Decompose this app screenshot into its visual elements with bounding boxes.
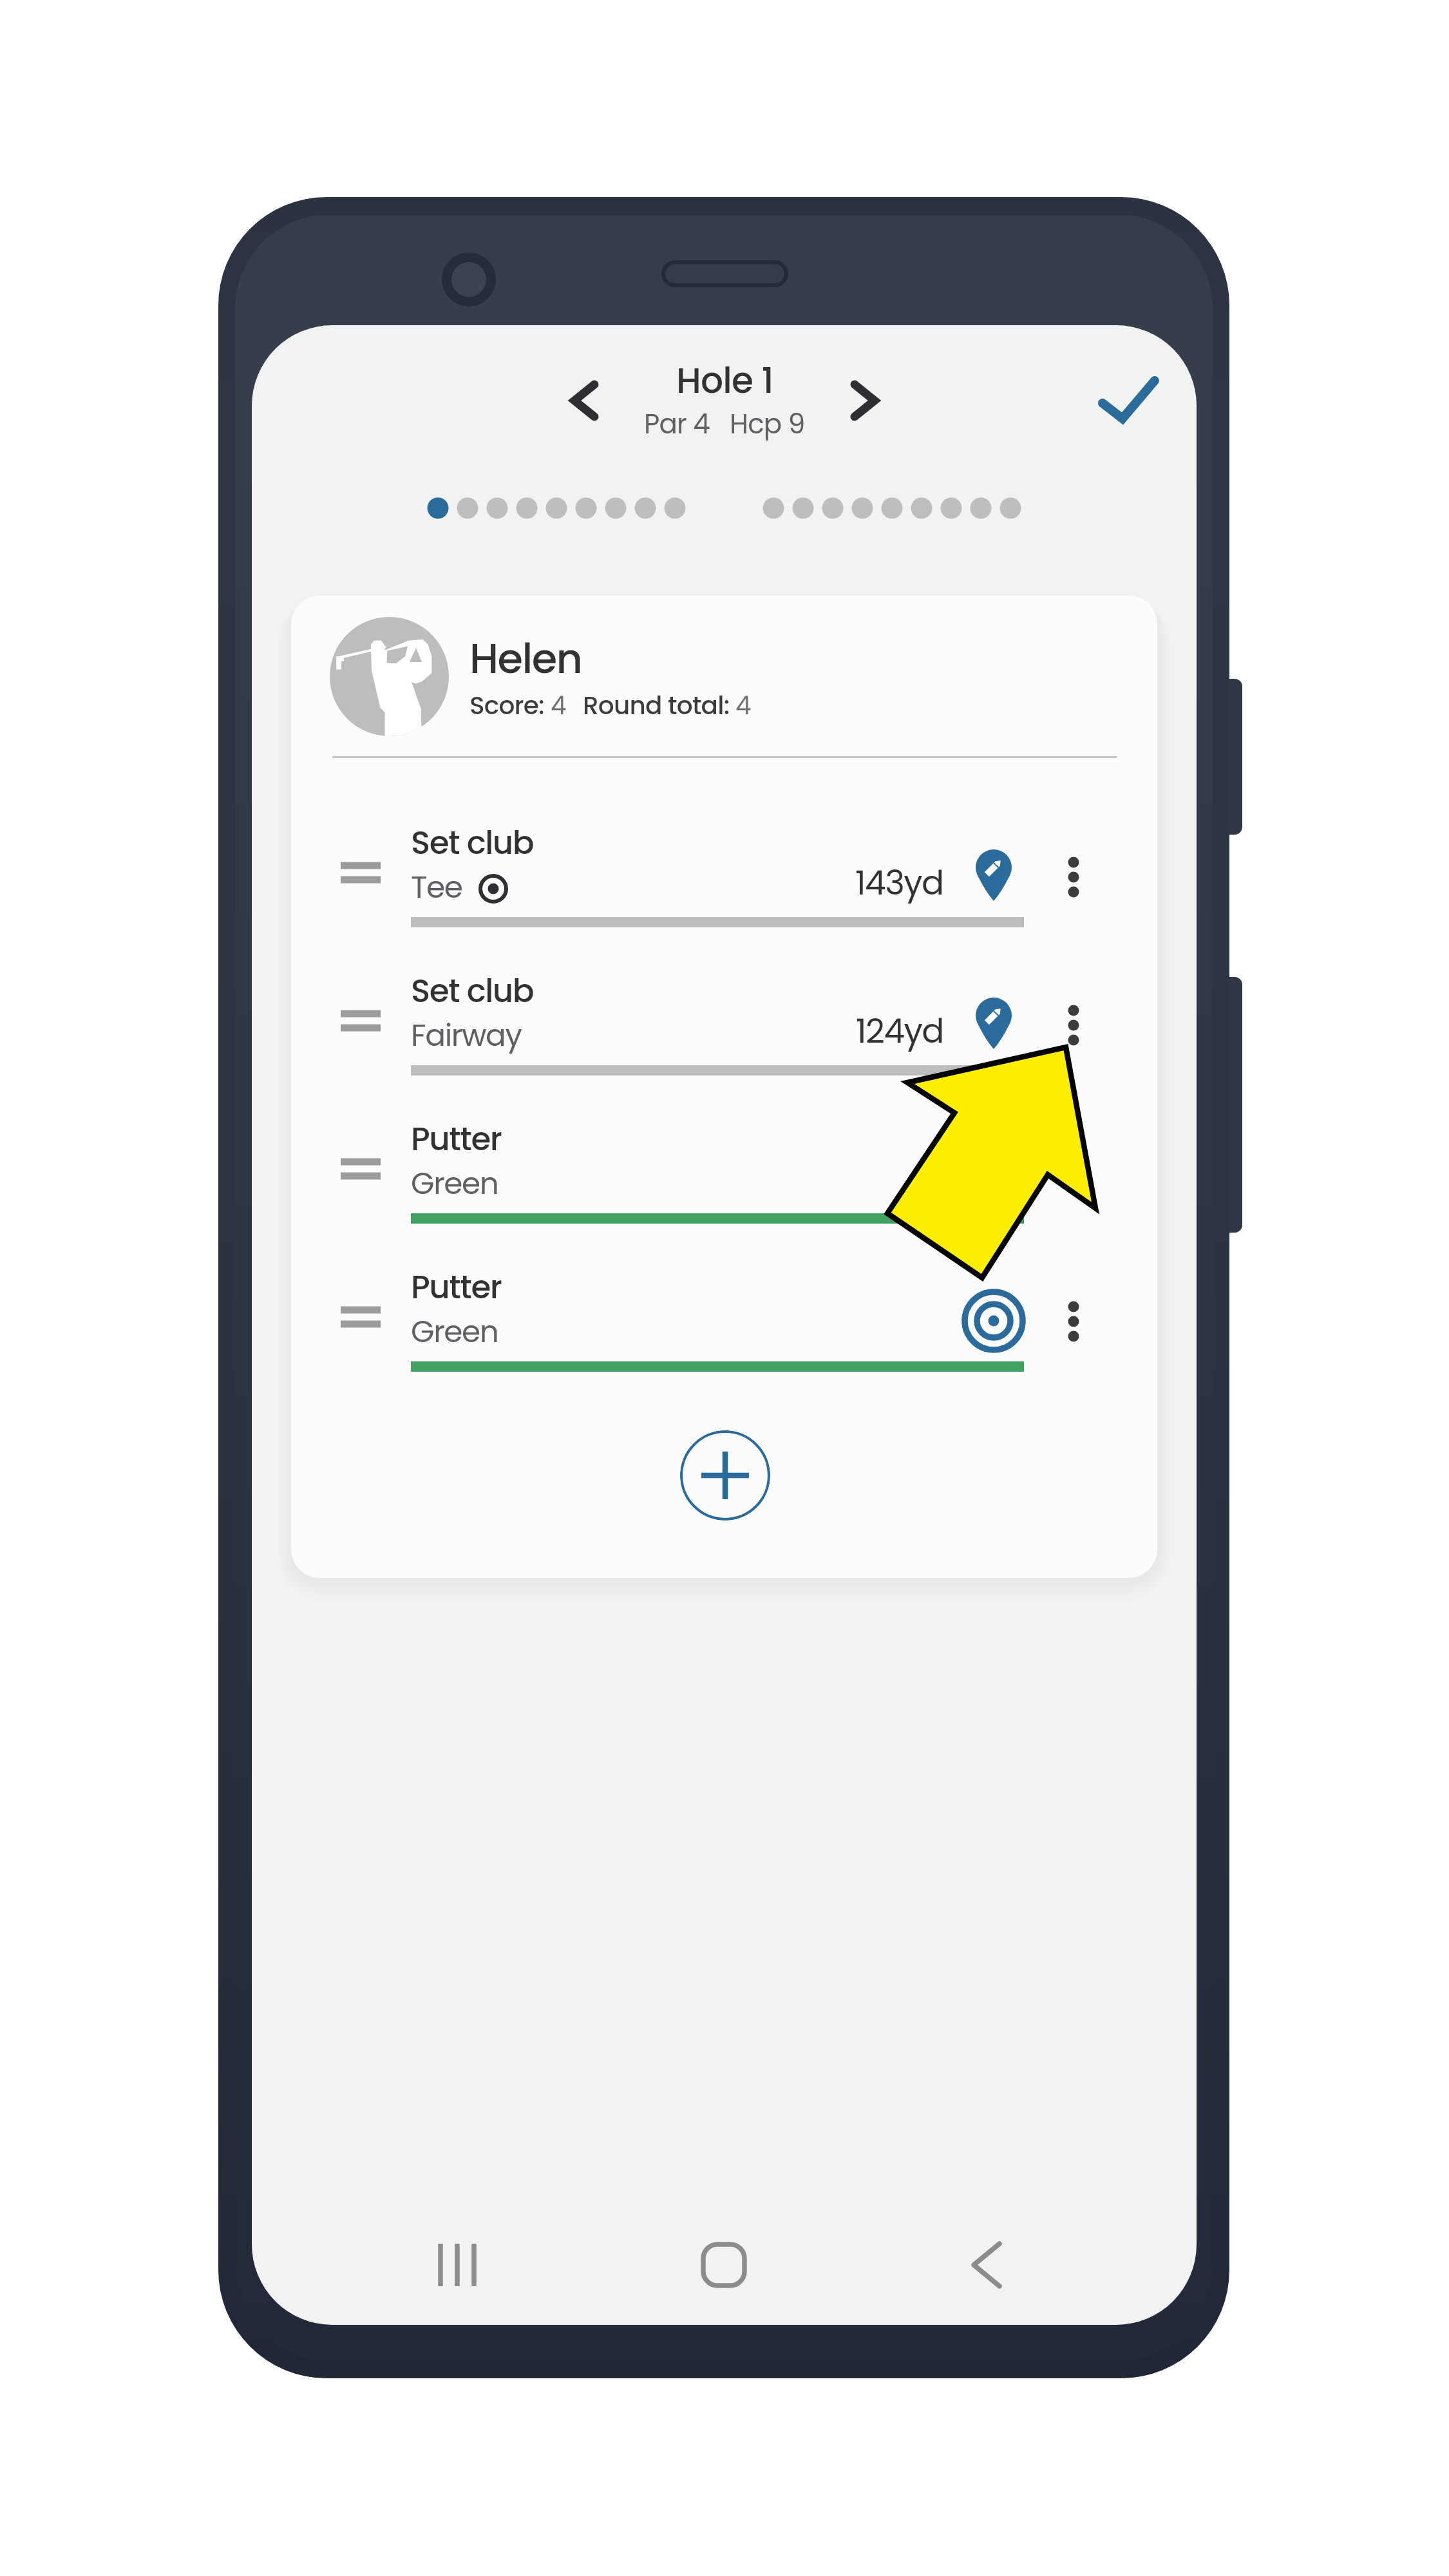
button[interactable]: Previous hole (535, 351, 631, 448)
staticText: Fairway (411, 1014, 522, 1057)
staticText: 4 (551, 688, 566, 723)
staticText: Green (411, 1162, 498, 1205)
button[interactable]: Save scorecard (1079, 351, 1176, 448)
button[interactable]: More options (1043, 846, 1104, 908)
button[interactable]: Reorder shot (330, 1140, 391, 1198)
button[interactable]: Back (948, 2226, 1025, 2304)
button[interactable]: Recent apps (419, 2226, 496, 2304)
button[interactable]: Reorder shot (330, 992, 391, 1050)
staticText: Par 4 Hcp 9 (644, 405, 805, 443)
staticText: 124yd (856, 1007, 943, 1054)
button[interactable]: Reorder shot (291, 1109, 1157, 1247)
staticText: Hole 1 (676, 355, 773, 405)
button[interactable]: Reorder shot (291, 1257, 1157, 1396)
button[interactable]: Holed out (958, 1285, 1029, 1356)
button[interactable]: Reorder shot (330, 844, 391, 902)
staticText: Score: (469, 688, 551, 723)
button[interactable]: More options (1043, 1291, 1104, 1352)
staticText: Set club (411, 820, 534, 866)
staticText: 4 (735, 688, 751, 723)
button[interactable]: Helen (451, 617, 811, 733)
button[interactable]: Home (685, 2226, 762, 2304)
staticText: Putter (411, 1265, 502, 1310)
staticText: Tee (411, 866, 462, 909)
button[interactable]: Next hole (818, 351, 914, 448)
button[interactable]: More options (1043, 994, 1104, 1056)
button[interactable]: Reorder shot (291, 813, 1157, 951)
staticText: Set club (411, 969, 534, 1014)
staticText: Round total: (583, 688, 735, 723)
staticText: 143yd (855, 859, 943, 906)
button[interactable]: Reorder shot (291, 961, 1157, 1099)
button[interactable]: Add shot (680, 1430, 770, 1520)
staticText: Putter (411, 1117, 502, 1162)
button[interactable]: Edit shot location (976, 849, 1012, 901)
staticText: Helen (469, 630, 582, 688)
button[interactable]: Reorder shot (330, 1288, 391, 1346)
button[interactable]: Hole 1 (634, 355, 815, 452)
staticText: Green (411, 1311, 498, 1353)
button[interactable]: Edit shot location (976, 998, 1012, 1049)
